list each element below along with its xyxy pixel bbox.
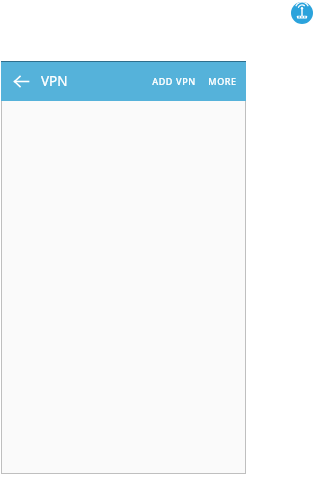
button[interactable]: Navigate up: [7, 67, 35, 95]
staticText: ADD VPN: [152, 75, 196, 87]
button[interactable]: ADD VPN: [147, 69, 201, 93]
staticText: MORE: [208, 75, 237, 87]
staticText: VPN: [41, 72, 68, 90]
button[interactable]: MORE: [203, 69, 242, 93]
button[interactable]: Wireless router: [291, 2, 313, 24]
